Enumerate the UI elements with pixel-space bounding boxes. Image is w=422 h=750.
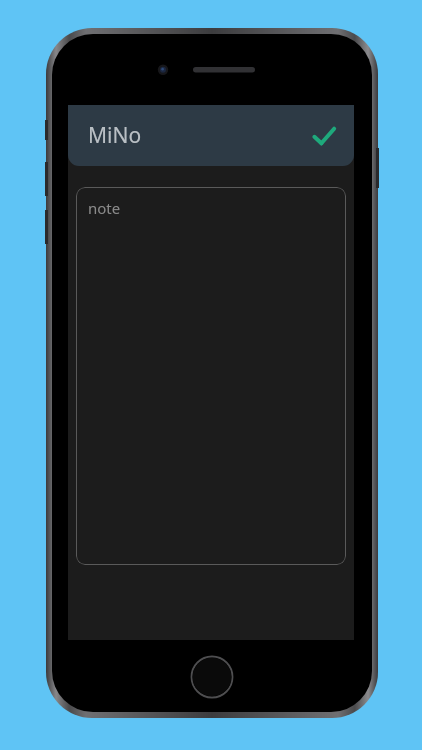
staticText: note — [88, 198, 121, 218]
button[interactable]: note — [76, 187, 346, 565]
button[interactable]: Home — [189, 654, 235, 700]
staticText: MiNo — [88, 121, 142, 150]
button[interactable]: Save note — [300, 112, 348, 160]
